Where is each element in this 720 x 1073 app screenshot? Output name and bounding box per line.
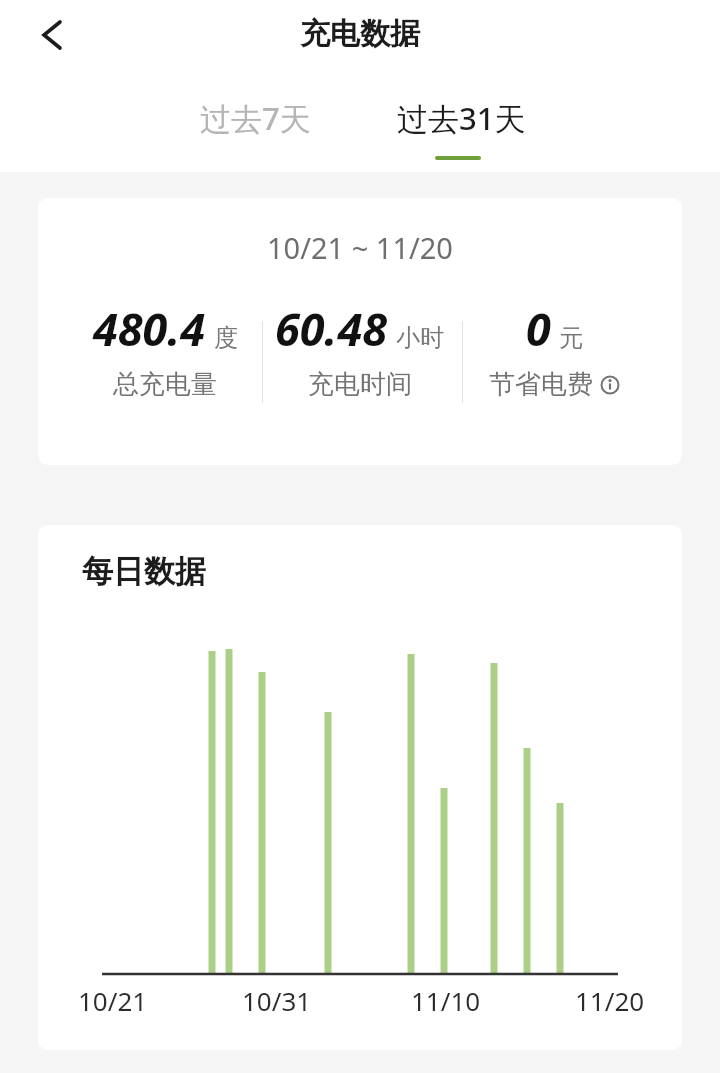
staticText: 480.4 [93,298,206,359]
staticText: 过去7天 [200,97,311,139]
staticText: 小时 [396,323,444,353]
staticText: 度 [214,323,238,353]
button[interactable] [28,11,76,59]
staticText: 元 [559,323,583,353]
staticText: 10/21 ~ 11/20 [267,228,453,267]
button[interactable]: 过去31天 [386,93,536,143]
staticText: 11/10 [411,983,481,1018]
staticText: 过去31天 [397,97,526,139]
staticText: 0 [526,298,551,359]
staticText: 节省电费 [489,368,593,401]
staticText: 充电时间 [308,368,412,401]
staticText: 总充电量 [113,368,217,401]
button[interactable] [599,374,621,396]
staticText: 60.48 [275,298,388,359]
staticText: 10/31 [242,983,312,1018]
staticText: 每日数据 [82,552,206,591]
button[interactable]: 过去7天 [185,93,325,143]
staticText: 11/20 [575,983,645,1018]
staticText: 10/21 [78,983,148,1018]
staticText: 充电数据 [300,15,420,53]
